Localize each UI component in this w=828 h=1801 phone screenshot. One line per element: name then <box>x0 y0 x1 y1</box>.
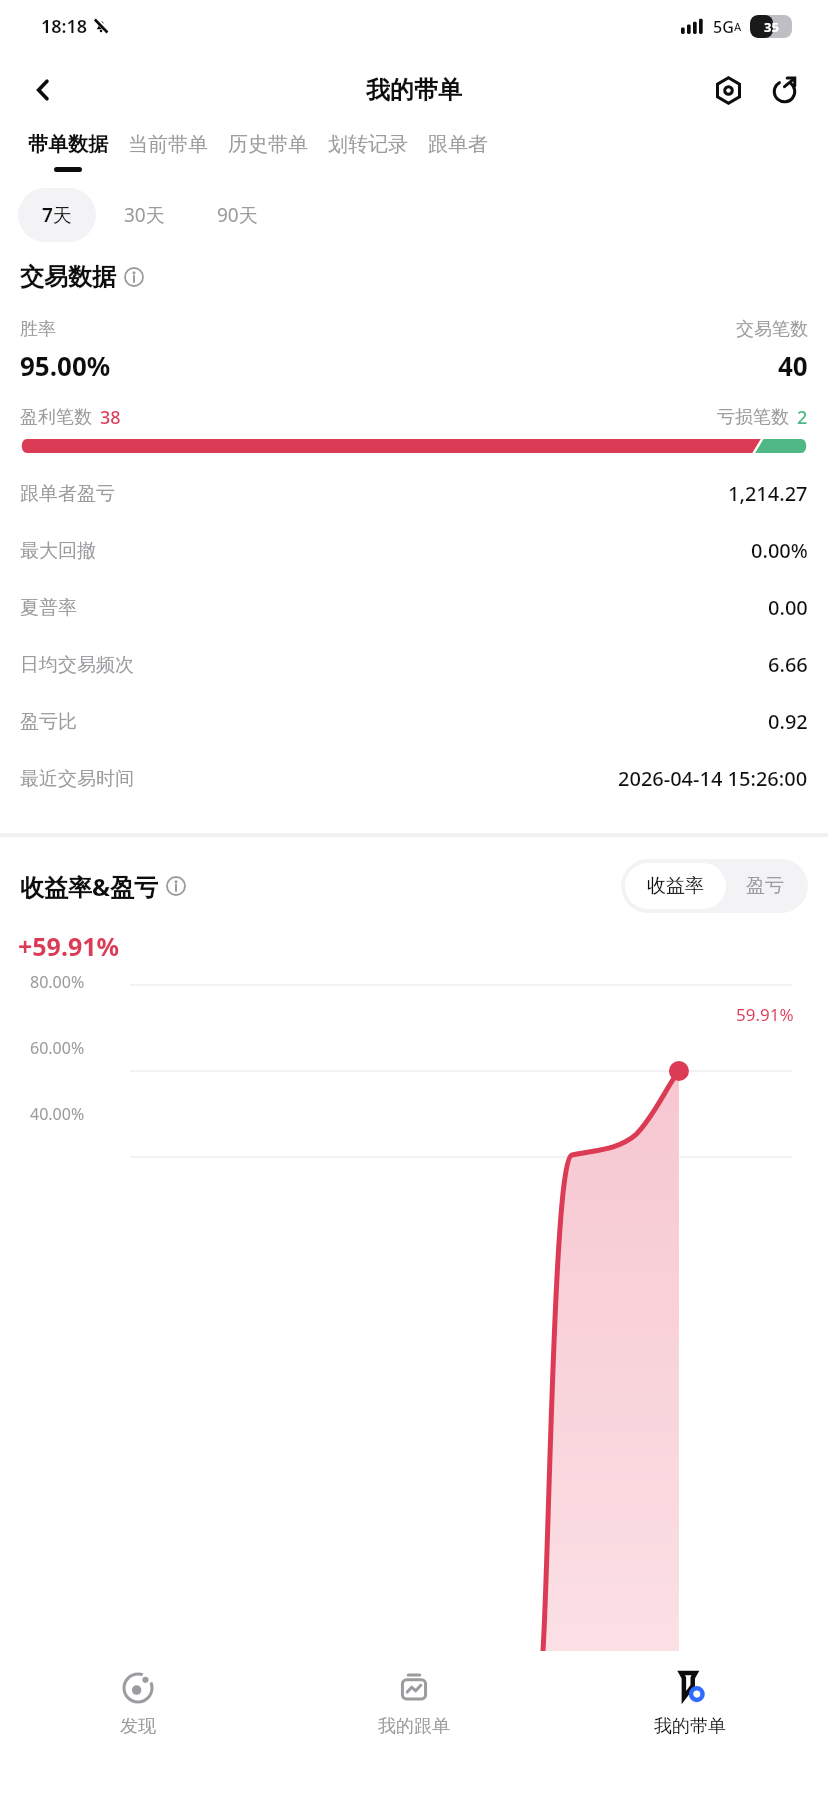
staticText: 当前带单 <box>128 132 208 157</box>
button[interactable]: 带单数据 <box>18 128 118 176</box>
staticText: 90天 <box>217 202 258 228</box>
button[interactable]: 跟单者 <box>418 128 498 171</box>
button[interactable]: 分享 <box>760 66 808 114</box>
button[interactable]: 盈亏比 <box>0 693 828 750</box>
staticText: A <box>734 19 742 34</box>
staticText: 60.00% <box>30 1037 85 1059</box>
button[interactable]: 设置 <box>704 66 752 114</box>
staticText: 59.91% <box>736 1003 794 1026</box>
staticText: 跟单者 <box>428 132 488 157</box>
button[interactable]: 历史带单 <box>218 128 318 171</box>
button[interactable]: 90天 <box>193 188 282 242</box>
staticText: 发现 <box>120 1715 156 1738</box>
staticText: 80.00% <box>30 971 85 993</box>
staticText: 0.00% <box>751 537 808 564</box>
button[interactable]: 夏普率 <box>0 579 828 636</box>
staticText: 亏损笔数 <box>717 406 789 429</box>
button[interactable]: 我的带单 <box>552 1651 828 1738</box>
staticText: 盈亏 <box>746 874 784 898</box>
staticText: 2026-04-14 15:26:00 <box>618 765 808 792</box>
button[interactable]: 划转记录 <box>318 128 418 171</box>
staticText: 40.00% <box>30 1103 85 1125</box>
button[interactable]: 30天 <box>100 188 189 242</box>
staticText: 划转记录 <box>328 132 408 157</box>
staticText: 我的带单 <box>654 1715 726 1738</box>
button[interactable]: 我的跟单 <box>276 1651 552 1738</box>
button[interactable]: 收益率 <box>625 863 726 909</box>
staticText: 6.66 <box>768 651 808 678</box>
staticText: 38 <box>100 405 121 430</box>
staticText: 95.00% <box>20 348 111 383</box>
staticText: 盈亏比 <box>20 710 77 734</box>
staticText: 7天 <box>42 202 72 228</box>
staticText: 5G <box>713 16 734 38</box>
staticText: 最近交易时间 <box>20 767 134 791</box>
staticText: 带单数据 <box>28 132 108 157</box>
staticText: 跟单者盈亏 <box>20 482 115 506</box>
button[interactable]: 跟单者盈亏 <box>0 465 828 522</box>
staticText: 盈利笔数 <box>20 406 92 429</box>
button[interactable]: 日均交易频次 <box>0 636 828 693</box>
staticText: 最大回撤 <box>20 539 96 563</box>
staticText: 交易数据 <box>20 262 116 292</box>
staticText: 30天 <box>124 202 165 228</box>
staticText: 0.92 <box>768 708 808 735</box>
button[interactable]: 最近交易时间 <box>0 750 828 807</box>
button[interactable]: 7天 <box>18 188 96 242</box>
other: 说明 <box>124 267 144 287</box>
staticText: 历史带单 <box>228 132 308 157</box>
staticText: 18:18 <box>41 14 88 39</box>
staticText: 我的跟单 <box>378 1715 450 1738</box>
staticText: 胜率 <box>20 318 56 341</box>
staticText: 日均交易频次 <box>20 653 134 677</box>
staticText: +59.91% <box>18 929 120 963</box>
staticText: 1,214.27 <box>728 480 808 507</box>
staticText: 40 <box>778 348 808 383</box>
staticText: 0.00 <box>768 594 808 621</box>
button[interactable]: 发现 <box>0 1651 276 1738</box>
button[interactable]: 最大回撤 <box>0 522 828 579</box>
other: 说明 <box>166 876 186 896</box>
staticText: 我的带单 <box>366 75 462 105</box>
staticText: 夏普率 <box>20 596 77 620</box>
staticText: 收益率&盈亏 <box>20 870 158 903</box>
staticText: 交易笔数 <box>736 318 808 341</box>
button[interactable]: 返回 <box>20 67 66 113</box>
staticText: 收益率 <box>647 874 704 898</box>
button[interactable]: 盈亏 <box>726 863 804 909</box>
button[interactable]: 当前带单 <box>118 128 218 171</box>
staticText: 35 <box>764 18 779 36</box>
staticText: 2 <box>797 405 808 430</box>
